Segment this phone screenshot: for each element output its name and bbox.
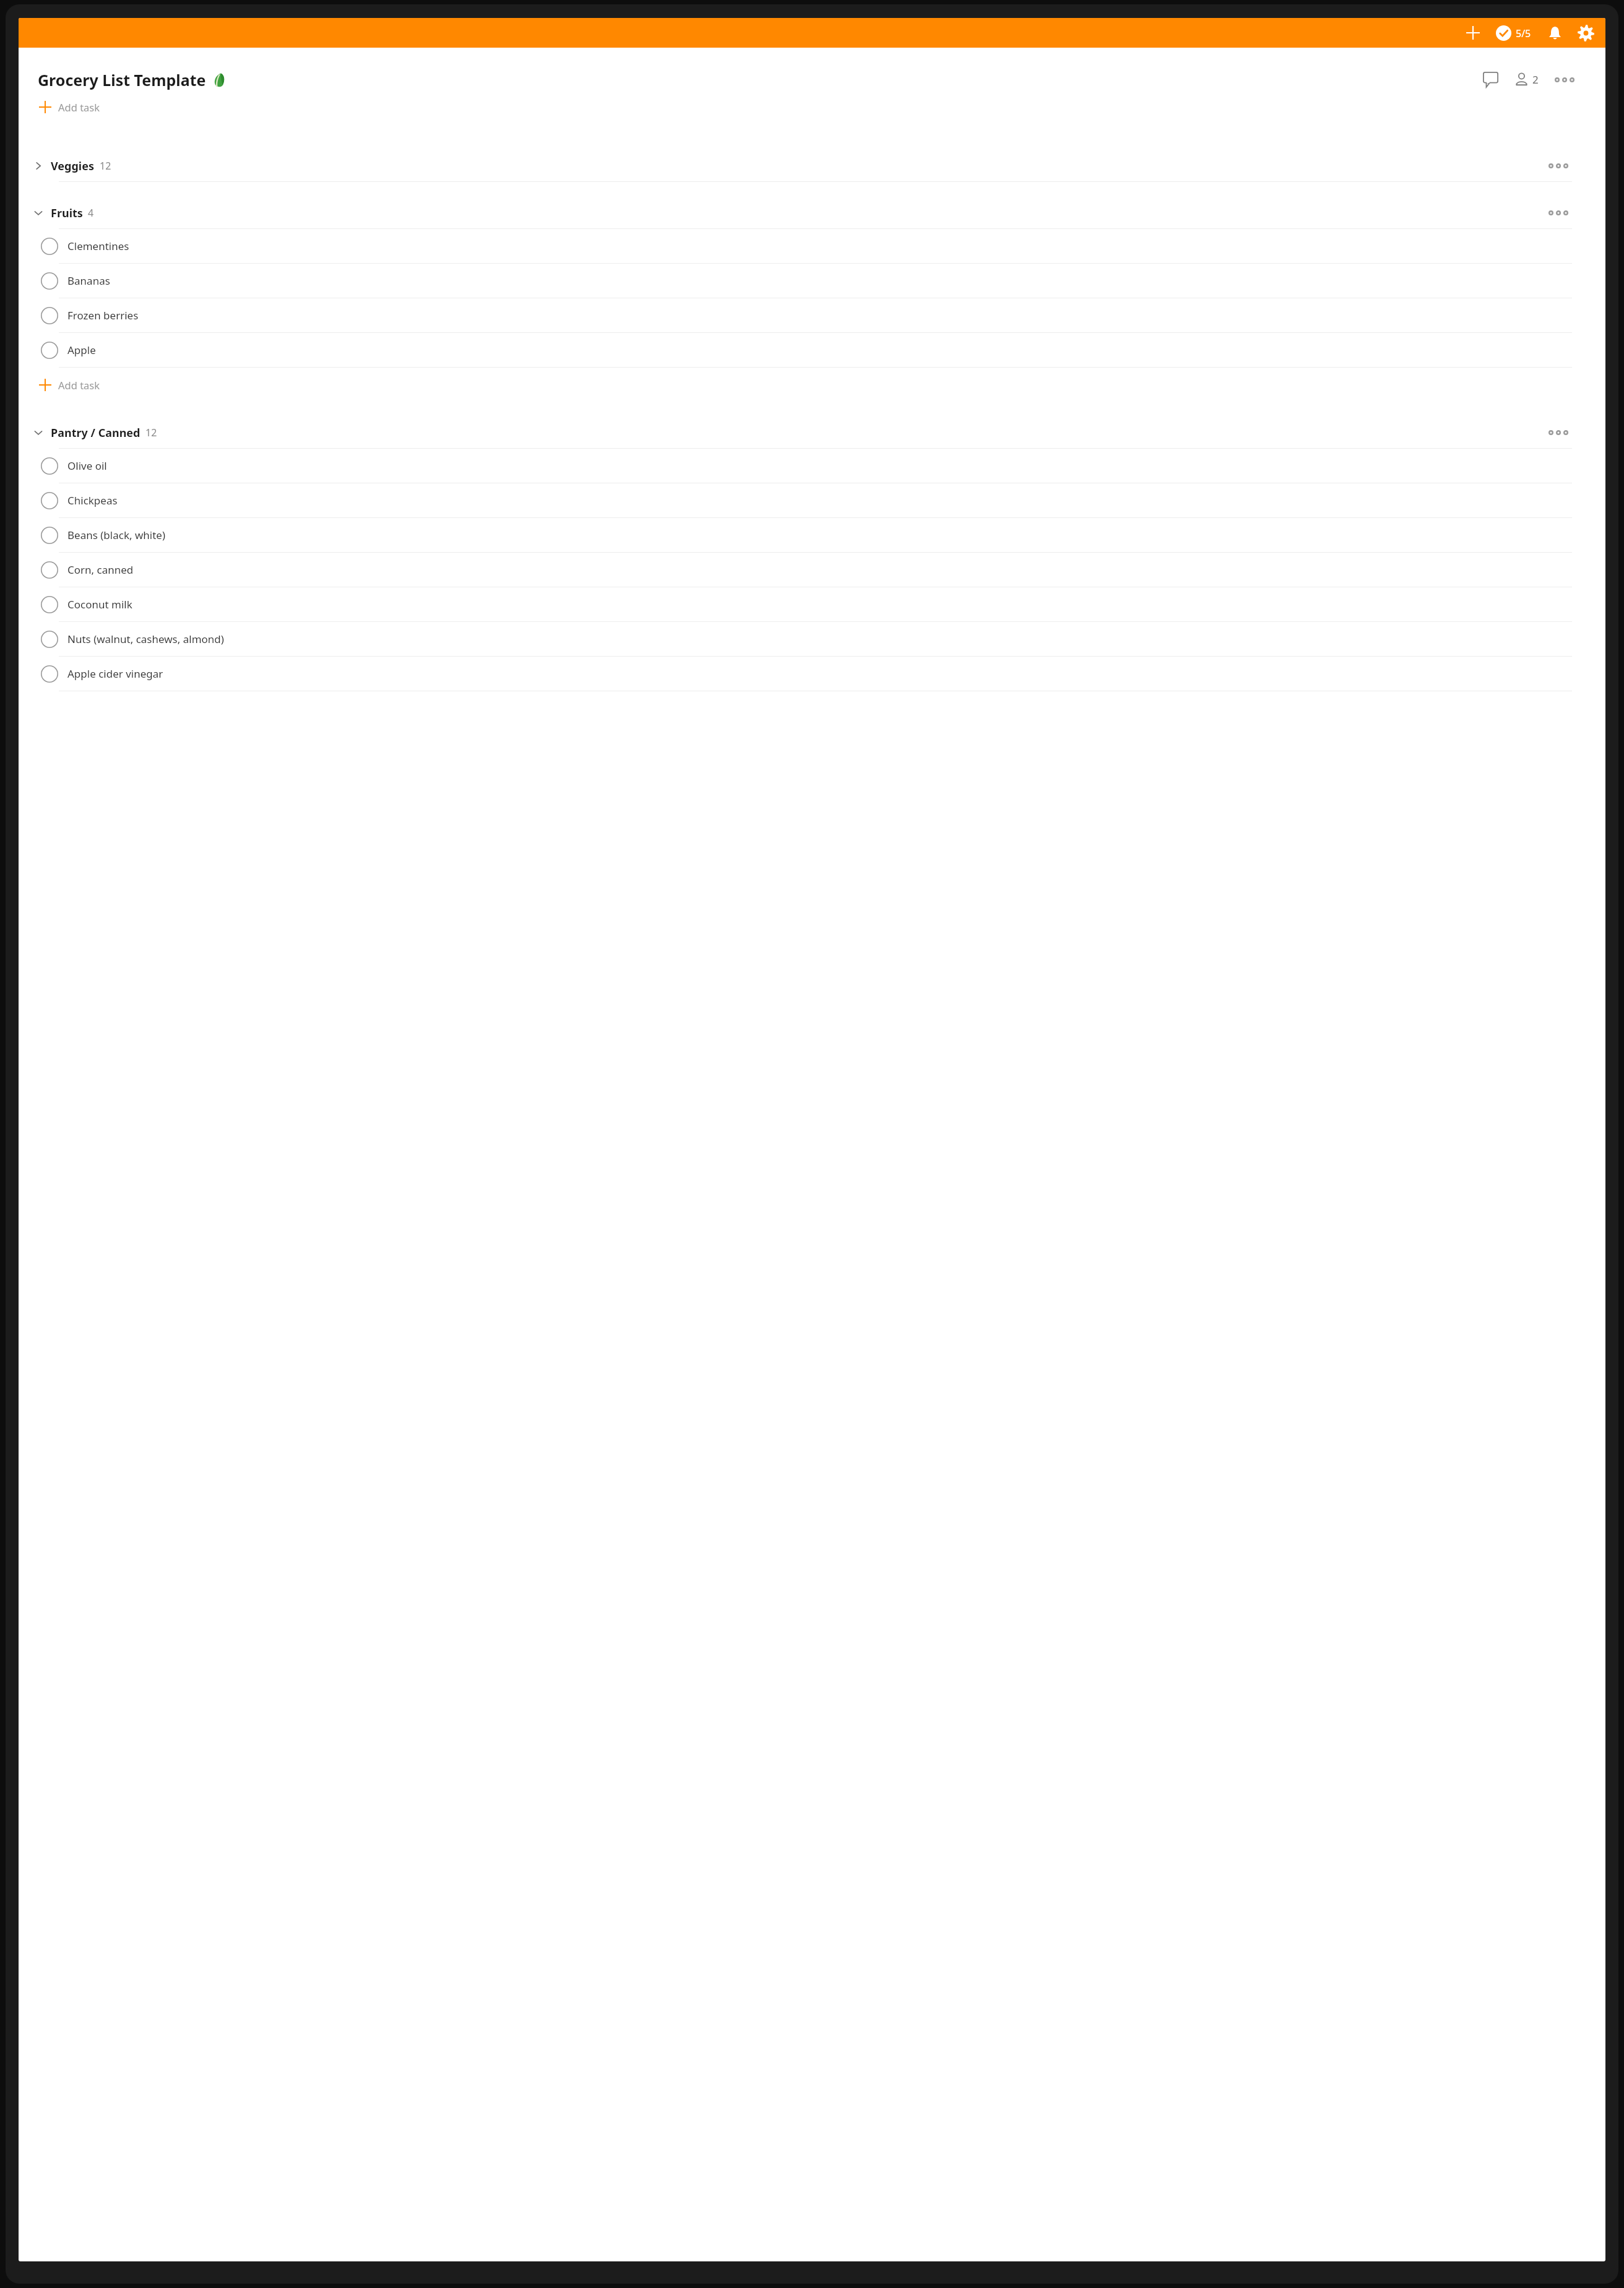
- button[interactable]: Coconut milk: [19, 587, 1605, 621]
- staticText: Clementines: [67, 239, 129, 253]
- button[interactable]: Add: [1460, 22, 1486, 43]
- staticText: 5/5: [1516, 27, 1531, 40]
- button[interactable]: More options: [1551, 74, 1578, 86]
- button[interactable]: Beans (black, white): [19, 518, 1605, 552]
- button[interactable]: Fruits: [19, 197, 1605, 228]
- staticText: Corn, canned: [67, 563, 134, 577]
- staticText: 2: [1532, 72, 1539, 87]
- button[interactable]: Apple: [19, 333, 1605, 367]
- button[interactable]: Frozen berries: [19, 298, 1605, 332]
- button[interactable]: 5/5: [1493, 22, 1534, 45]
- button[interactable]: Apple cider vinegar: [19, 657, 1605, 691]
- button[interactable]: Add task: [19, 368, 1605, 402]
- staticText: Chickpeas: [67, 493, 118, 507]
- staticText: Frozen berries: [67, 308, 139, 322]
- staticText: Add task: [58, 378, 100, 392]
- button[interactable]: Comments: [1479, 68, 1502, 91]
- staticText: Nuts (walnut, cashews, almond): [67, 632, 224, 646]
- button[interactable]: Veggies: [19, 150, 1605, 181]
- staticText: Fruits: [51, 205, 83, 221]
- button[interactable]: Chickpeas: [19, 483, 1605, 517]
- button[interactable]: Members: [1512, 69, 1541, 90]
- staticText: 12: [145, 426, 157, 439]
- button[interactable]: Settings: [1575, 22, 1597, 44]
- staticText: 4: [88, 206, 94, 220]
- staticText: Grocery List Template: [38, 69, 206, 90]
- button[interactable]: Nuts (walnut, cashews, almond): [19, 622, 1605, 656]
- staticText: Bananas: [67, 274, 110, 288]
- staticText: Apple: [67, 343, 96, 357]
- staticText: Veggies: [51, 158, 95, 174]
- staticText: Add task: [58, 100, 100, 114]
- button[interactable]: Clementines: [19, 229, 1605, 263]
- button[interactable]: Pantry / Canned: [19, 417, 1605, 448]
- staticText: Coconut milk: [67, 597, 132, 611]
- button[interactable]: Olive oil: [19, 449, 1605, 483]
- button[interactable]: Bananas: [19, 264, 1605, 298]
- button[interactable]: Notifications: [1544, 23, 1566, 43]
- button[interactable]: Section options: [1545, 207, 1572, 219]
- staticText: Apple cider vinegar: [67, 667, 163, 681]
- staticText: Olive oil: [67, 459, 107, 473]
- button[interactable]: Corn, canned: [19, 553, 1605, 587]
- staticText: Pantry / Canned: [51, 425, 140, 441]
- button[interactable]: Add task: [19, 97, 1605, 118]
- staticText: Beans (black, white): [67, 528, 166, 542]
- button[interactable]: Section options: [1545, 426, 1572, 439]
- button[interactable]: Section options: [1545, 160, 1572, 172]
- staticText: 12: [100, 159, 111, 173]
